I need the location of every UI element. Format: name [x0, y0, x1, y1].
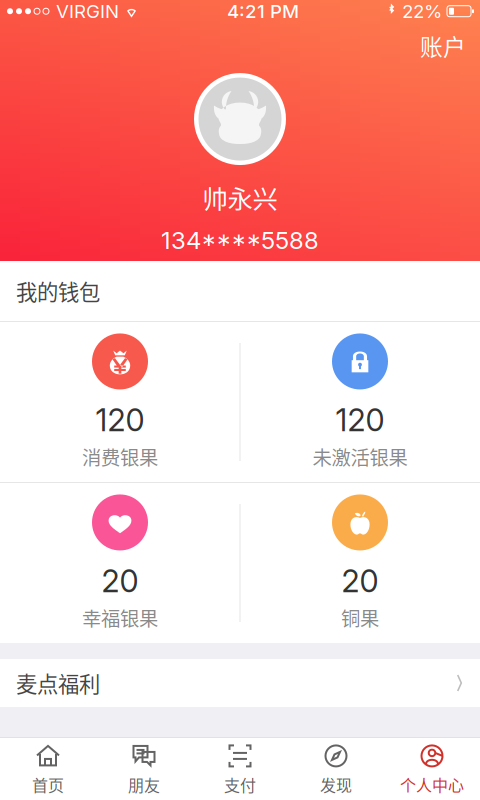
button[interactable]: 支付 — [192, 738, 288, 800]
staticText: VIRGIN — [56, 0, 119, 22]
staticText: 未激活银果 — [312, 443, 407, 471]
button[interactable]: 个人中心 — [384, 738, 480, 800]
staticText: 120 — [335, 401, 384, 438]
button[interactable]: 首页 — [0, 738, 96, 800]
button[interactable]: 发现 — [288, 738, 384, 800]
button[interactable]: 120 — [0, 322, 239, 482]
staticText: 铜果 — [341, 604, 379, 632]
button[interactable]: 20 — [0, 483, 239, 643]
staticText: 发现 — [320, 773, 352, 796]
staticText: 22% — [402, 0, 442, 22]
staticText: 20 — [101, 562, 138, 599]
staticText: 麦点福利 — [16, 668, 100, 698]
staticText: 我的钱包 — [16, 276, 100, 306]
staticText: 20 — [341, 562, 378, 599]
button[interactable]: 120 — [240, 322, 479, 482]
staticText: 120 — [95, 401, 144, 438]
staticText: 账户 — [420, 29, 466, 62]
button[interactable]: 麦点福利 — [0, 659, 480, 707]
staticText: 4:21 PM — [227, 0, 299, 22]
staticText: 个人中心 — [400, 773, 464, 796]
button[interactable]: 账户 — [406, 24, 480, 67]
staticText: 幸福银果 — [82, 604, 158, 632]
staticText: 134****5588 — [161, 226, 319, 255]
staticText: 支付 — [224, 773, 256, 796]
staticText: 朋友 — [128, 773, 160, 796]
staticText: 首页 — [32, 773, 64, 796]
button[interactable]: 朋友 — [96, 738, 192, 800]
button[interactable]: 20 — [240, 483, 479, 643]
staticText: 消费银果 — [82, 443, 158, 471]
staticText: 帅永兴 — [202, 179, 277, 216]
